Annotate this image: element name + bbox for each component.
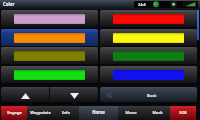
button[interactable]: Menu (118, 106, 144, 120)
button[interactable]: Mark (144, 106, 170, 120)
staticText: Engage (7, 110, 22, 115)
button[interactable]: Info (53, 106, 79, 120)
staticText: 24:4 (138, 2, 146, 7)
staticText: SOS (179, 110, 187, 115)
button[interactable]: Status (134, 1, 198, 8)
staticText: Menu (125, 110, 137, 115)
button[interactable] (1, 66, 98, 83)
button[interactable]: Scroll up (1, 87, 49, 102)
button[interactable]: SOS (170, 106, 196, 120)
staticText: Waypoints (30, 110, 51, 115)
button[interactable] (100, 29, 197, 46)
button[interactable]: Home (79, 106, 118, 120)
button[interactable]: Back (100, 87, 197, 102)
button[interactable] (1, 47, 98, 64)
staticText: Back (147, 93, 157, 98)
button[interactable] (1, 10, 98, 27)
button[interactable] (100, 66, 197, 83)
staticText: Mark (152, 110, 163, 115)
button[interactable] (100, 10, 197, 27)
button[interactable] (100, 47, 197, 64)
button[interactable]: Engage (1, 106, 27, 120)
staticText: Color (3, 1, 15, 7)
button[interactable] (1, 29, 98, 46)
button[interactable]: Scroll down (50, 87, 98, 102)
staticText: Home (92, 109, 105, 115)
button[interactable]: Waypoints (27, 106, 53, 120)
staticText: Info (62, 110, 70, 115)
